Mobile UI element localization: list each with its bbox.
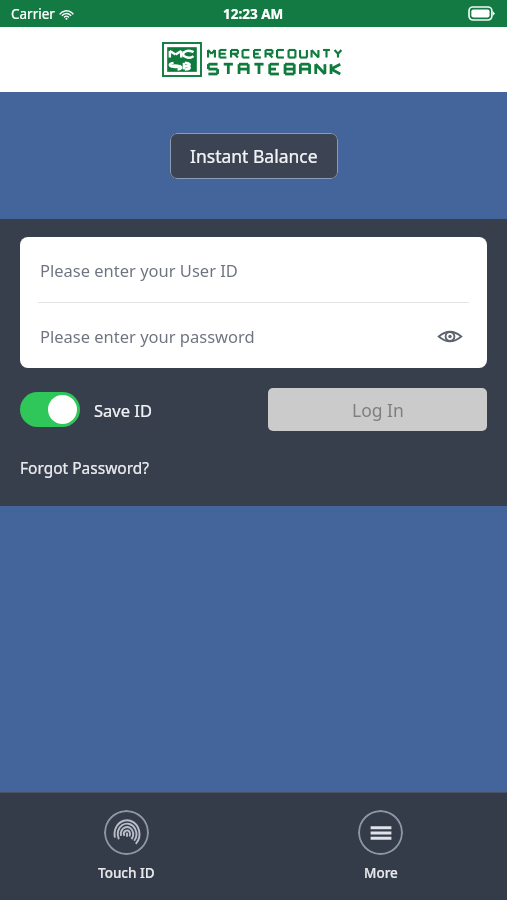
staticText: More xyxy=(364,864,398,882)
button[interactable]: Save ID xyxy=(20,392,152,427)
button[interactable]: Please enter your password xyxy=(20,303,487,368)
staticText: Carrier xyxy=(11,5,55,23)
staticText: Save ID xyxy=(94,399,152,421)
button[interactable]: Touch ID xyxy=(92,804,161,888)
staticText: Instant Balance xyxy=(190,144,318,168)
button[interactable]: More xyxy=(352,804,409,888)
staticText: Please enter your User ID xyxy=(40,259,238,281)
button[interactable]: Show password xyxy=(433,319,467,353)
staticText: Touch ID xyxy=(98,864,155,882)
staticText: Please enter your password xyxy=(40,325,255,347)
button[interactable]: Forgot Password? xyxy=(20,457,150,478)
staticText: Forgot Password? xyxy=(20,457,150,478)
staticText: 12:23 AM xyxy=(223,5,284,23)
staticText: Log In xyxy=(352,398,404,422)
button[interactable]: Please enter your User ID xyxy=(20,237,487,302)
button[interactable]: Log In xyxy=(268,388,487,431)
button[interactable]: Instant Balance xyxy=(170,133,338,179)
